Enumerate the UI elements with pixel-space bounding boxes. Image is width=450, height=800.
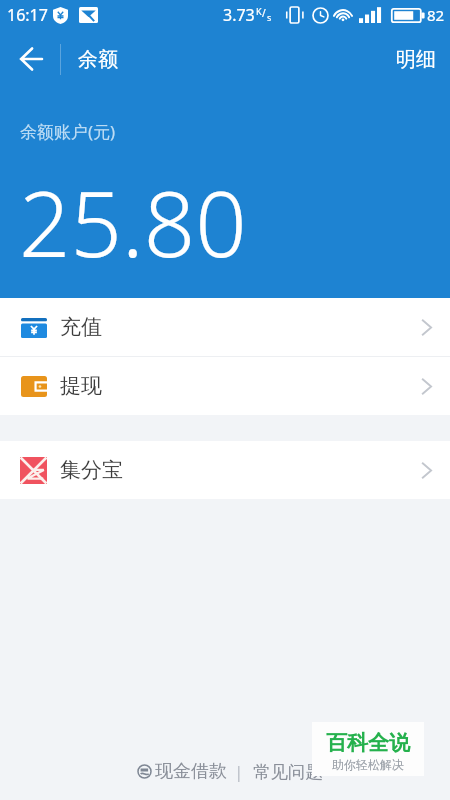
staticText: s <box>267 11 272 23</box>
staticText: 提现 <box>60 373 102 399</box>
button[interactable]: 现金借款 <box>137 760 227 783</box>
staticText: 助你轻松解决 <box>332 757 404 772</box>
staticText: K <box>256 5 262 17</box>
staticText: 余额 <box>78 47 118 72</box>
staticText: 3.73 <box>223 4 255 26</box>
staticText: 充值 <box>60 314 102 340</box>
button[interactable]: 充值 <box>0 298 450 356</box>
button[interactable]: Back <box>0 30 61 88</box>
button[interactable]: 集分宝 <box>0 441 450 499</box>
staticText: 82 <box>427 5 445 25</box>
staticText: 余额账户(元) <box>20 120 116 143</box>
staticText: 现金借款 <box>155 760 227 783</box>
staticText: | <box>234 760 244 783</box>
staticText: 集分宝 <box>60 457 123 483</box>
staticText: / <box>262 6 266 20</box>
button[interactable]: 提现 <box>0 357 450 415</box>
button[interactable]: 明细 <box>380 37 450 82</box>
staticText: 明细 <box>396 47 436 72</box>
staticText: 16:17 <box>7 4 48 26</box>
button[interactable]: 常见问题 <box>253 761 323 783</box>
staticText: 25.80 <box>19 161 247 284</box>
staticText: 百科全说 <box>326 730 410 756</box>
